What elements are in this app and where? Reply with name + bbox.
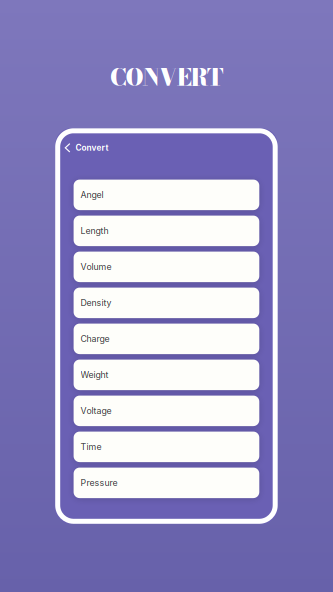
button[interactable]: Density xyxy=(74,288,259,318)
button[interactable]: Volume xyxy=(74,252,259,282)
button[interactable]: Length xyxy=(74,216,259,246)
staticText: Length xyxy=(81,225,109,236)
button[interactable]: Pressure xyxy=(74,468,259,498)
staticText: Pressure xyxy=(81,477,118,488)
button[interactable]: Voltage xyxy=(74,396,259,426)
staticText: Density xyxy=(81,297,112,308)
button[interactable]: Time xyxy=(74,432,259,462)
staticText: Convert xyxy=(75,143,108,153)
button[interactable]: Convert xyxy=(55,137,116,159)
button[interactable]: Weight xyxy=(74,360,259,390)
button[interactable]: Charge xyxy=(74,324,259,354)
button[interactable]: Angel xyxy=(74,180,259,210)
staticText: Weight xyxy=(81,369,109,380)
staticText: Time xyxy=(81,441,102,452)
staticText: Angel xyxy=(81,189,104,200)
staticText: Voltage xyxy=(81,405,112,416)
staticText: Volume xyxy=(81,261,112,272)
staticText: Charge xyxy=(81,333,110,344)
staticText: CONVERT xyxy=(110,60,223,95)
